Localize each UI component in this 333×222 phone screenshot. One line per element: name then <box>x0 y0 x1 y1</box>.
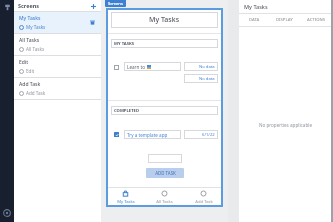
staticText: Add Task <box>195 199 213 205</box>
staticText: Learn to <box>127 64 147 70</box>
staticText: MY TASKS <box>114 41 135 47</box>
staticText: All Tasks <box>26 46 45 52</box>
button[interactable]: Add Task <box>184 188 223 207</box>
button[interactable]: Try a template app <box>124 130 181 139</box>
button[interactable]: App menu <box>2 2 12 12</box>
staticText: My Tasks <box>19 15 41 22</box>
staticText: My Tasks <box>26 24 46 30</box>
staticText: Screens <box>18 2 40 9</box>
button[interactable]: ADD TASK <box>146 168 184 178</box>
staticText: Add Task <box>26 90 46 96</box>
staticText: Try a template app <box>127 132 168 138</box>
staticText: 6/1/22 <box>202 132 215 138</box>
staticText: No properties applicable <box>259 122 312 128</box>
button[interactable]: 6/1/22 <box>184 130 218 139</box>
button[interactable]: Toggle completed task <box>111 129 121 139</box>
button[interactable]: All Tasks <box>14 34 101 55</box>
staticText: DISPLAY <box>276 17 293 23</box>
staticText: All Tasks <box>19 37 40 44</box>
button[interactable]: All Tasks <box>145 188 184 207</box>
staticText: ACTIONS <box>307 17 325 23</box>
button[interactable]: Edit <box>14 56 101 77</box>
staticText: Edit <box>19 59 29 66</box>
button[interactable]: COMPLETED <box>111 106 218 115</box>
staticText: All Tasks <box>156 199 173 205</box>
button[interactable]: Add screen <box>89 2 97 10</box>
button[interactable]: DATA <box>239 14 269 26</box>
staticText: No data <box>199 76 215 82</box>
staticText: Edit <box>26 68 35 74</box>
button[interactable]: Toggle task complete <box>111 62 121 72</box>
button[interactable]: Learn to <box>124 62 181 71</box>
staticText: COMPLETED <box>114 108 139 114</box>
staticText: DATA <box>249 17 260 23</box>
staticText: No data <box>199 64 215 70</box>
button[interactable]: ACTIONS <box>300 14 331 26</box>
button[interactable]: Add Task <box>14 78 101 99</box>
staticText: Screens <box>108 1 123 6</box>
button[interactable]: Screens <box>105 0 126 7</box>
staticText: My Tasks <box>244 3 268 10</box>
button[interactable]: Settings <box>1 207 13 219</box>
button[interactable]: No data <box>184 74 218 83</box>
button[interactable] <box>148 154 182 163</box>
staticText: My Tasks <box>117 199 135 205</box>
button[interactable]: My Tasks <box>14 12 101 33</box>
button[interactable]: DISPLAY <box>269 14 300 26</box>
staticText: My Tasks <box>149 15 180 25</box>
button[interactable]: No data <box>184 62 218 71</box>
button[interactable]: MY TASKS <box>111 39 218 48</box>
button[interactable]: My Tasks <box>106 188 145 207</box>
staticText: Add Task <box>19 81 41 88</box>
button[interactable]: Delete screen <box>88 18 97 27</box>
staticText: ADD TASK <box>155 170 176 176</box>
